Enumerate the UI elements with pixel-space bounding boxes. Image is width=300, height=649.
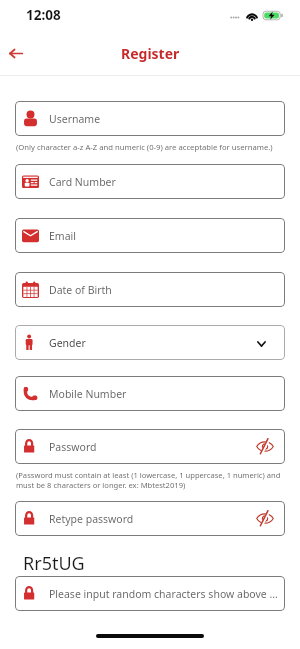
staticText: Username (49, 112, 281, 126)
button[interactable]: Card Number (15, 164, 285, 199)
button[interactable]: Back (1, 38, 31, 68)
button[interactable]: Date of Birth (15, 272, 285, 307)
staticText: (Password must contain at least (1 lower… (16, 470, 281, 490)
staticText: Email (49, 229, 281, 243)
staticText: Password (49, 440, 256, 454)
button[interactable]: Please input random characters show abov… (15, 576, 285, 611)
button[interactable]: Password (15, 429, 285, 464)
button[interactable]: Email (15, 218, 285, 253)
staticText: Rr5tUG (23, 551, 85, 576)
button[interactable]: Username (15, 101, 285, 136)
staticText: Gender (49, 336, 257, 350)
staticText: Please input random characters show abov… (49, 587, 281, 601)
staticText: Date of Birth (49, 283, 281, 297)
staticText: Card Number (49, 175, 281, 189)
button[interactable]: Gender (15, 325, 285, 360)
staticText: 12:08 (26, 6, 61, 24)
button[interactable]: Retype password (15, 501, 285, 536)
button[interactable]: Mobile Number (15, 376, 285, 411)
staticText: Mobile Number (49, 387, 281, 401)
staticText: Retype password (49, 512, 256, 526)
staticText: Register (121, 44, 180, 63)
staticText: (Only character a-z A-Z and numeric (0-9… (16, 142, 273, 152)
